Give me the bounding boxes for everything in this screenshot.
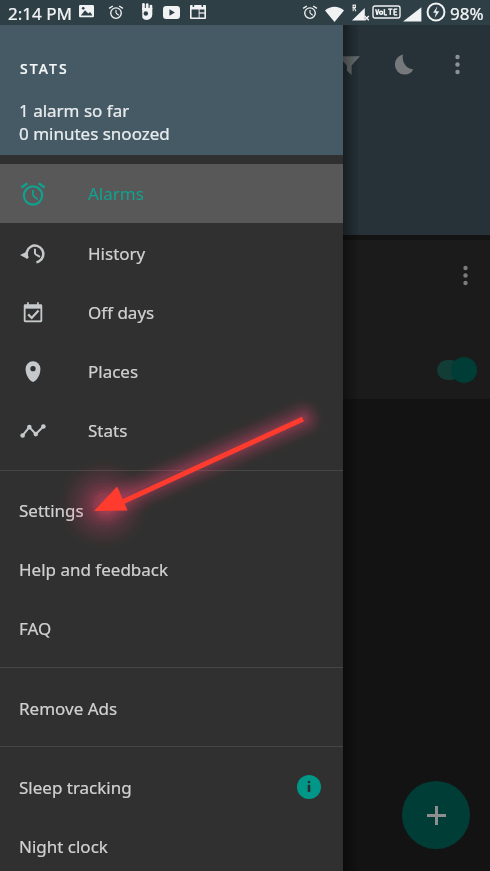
button[interactable]: Settings [0, 481, 343, 540]
staticText: Places [88, 360, 139, 383]
button[interactable]: Places [0, 342, 343, 401]
staticText: Alarms [88, 182, 144, 205]
button[interactable]: Info [297, 775, 321, 799]
staticText: Night clock [19, 835, 108, 858]
staticText: History [88, 242, 146, 265]
button[interactable]: Alarm menu [447, 257, 483, 293]
staticText: 0 minutes snoozed [19, 122, 170, 145]
button[interactable]: Add alarm [402, 781, 470, 849]
button[interactable]: Alarms [0, 164, 343, 223]
button[interactable]: More options [433, 40, 481, 88]
staticText: Sleep tracking [19, 776, 132, 799]
button[interactable]: Night clock [0, 817, 343, 871]
staticText: Settings [19, 499, 84, 522]
button[interactable]: Remove Ads [0, 679, 343, 738]
button[interactable]: Night mode [380, 40, 428, 88]
staticText: Help and feedback [19, 558, 169, 581]
staticText: Remove Ads [19, 697, 118, 720]
staticText: Off days [88, 301, 155, 324]
staticText: STATS [20, 59, 69, 78]
staticText: Stats [88, 419, 128, 442]
button[interactable]: FAQ [0, 599, 343, 658]
button[interactable]: Stats [0, 401, 343, 460]
staticText: 1 alarm so far [19, 99, 130, 122]
button[interactable]: Off days [0, 283, 343, 342]
staticText: 2:14 PM [8, 2, 72, 25]
button[interactable]: Sleep tracking [0, 758, 343, 817]
button[interactable]: Filter [325, 40, 373, 88]
button[interactable]: History [0, 224, 343, 283]
button[interactable]: Help and feedback [0, 540, 343, 599]
staticText: FAQ [19, 617, 52, 640]
staticText: 98% [450, 2, 484, 25]
